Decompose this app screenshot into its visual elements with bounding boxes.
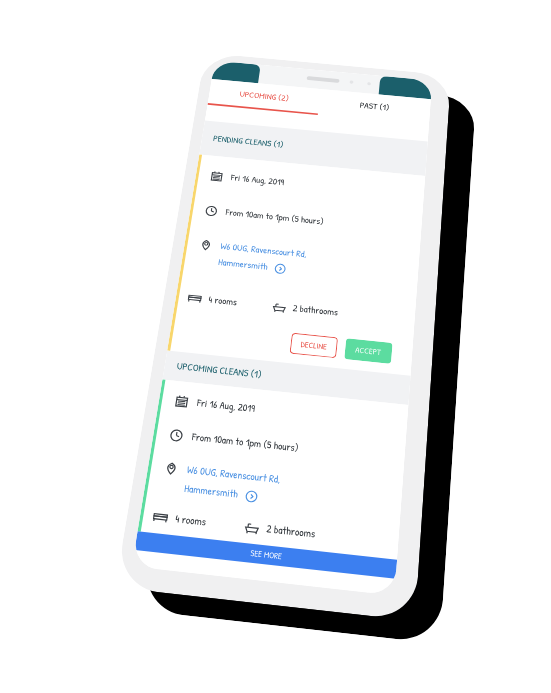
staticText: UPCOMING (2) — [239, 89, 290, 104]
button[interactable]: W6 0UG, Ravenscourt Rd, — [161, 460, 282, 506]
staticText: 4 rooms — [174, 511, 207, 530]
staticText: PENDING CLEANS (1) — [212, 133, 285, 151]
staticText: SEE MORE — [250, 547, 282, 563]
staticText: UPCOMING CLEANS (1) — [176, 359, 263, 382]
staticText: From 10am to 1pm (5 hours) — [191, 430, 300, 456]
button[interactable]: UPCOMING (2) — [208, 79, 321, 113]
button[interactable]: SEE MORE — [134, 531, 397, 579]
staticText: ACCEPT — [355, 344, 382, 358]
staticText: Hammersmith — [217, 256, 269, 273]
button[interactable]: W6 0UG, Ravenscourt Rd, — [197, 238, 308, 277]
staticText: DECLINE — [300, 338, 328, 352]
staticText: 4 rooms — [208, 293, 238, 309]
button[interactable]: DECLINE — [289, 333, 338, 358]
button[interactable]: ACCEPT — [344, 338, 393, 364]
staticText: PAST (1) — [359, 100, 390, 114]
staticText: Fri 16 Aug, 2019 — [230, 172, 285, 189]
staticText: 2 bathrooms — [265, 521, 317, 542]
staticText: Fri 16 Aug, 2019 — [196, 396, 257, 416]
button[interactable]: PAST (1) — [318, 89, 431, 124]
staticText: From 10am to 1pm (5 hours) — [225, 206, 325, 228]
staticText: Hammersmith — [183, 481, 239, 502]
staticText: W6 0UG, Ravenscourt Rd, — [220, 240, 308, 261]
staticText: 2 bathrooms — [292, 302, 339, 319]
staticText: W6 0UG, Ravenscourt Rd, — [186, 463, 282, 487]
